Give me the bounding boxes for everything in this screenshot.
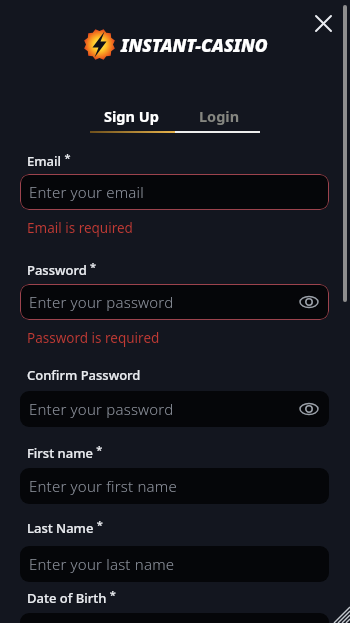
staticText: Login [199,106,240,126]
staticText: Email * [27,150,71,170]
button[interactable]: Enter your first name [20,468,329,504]
staticText: Password * [27,259,97,279]
staticText: Enter your password [29,292,174,312]
button[interactable] [306,6,340,40]
button[interactable]: Enter your email [20,174,329,210]
staticText: Enter your email [29,182,144,202]
staticText: Password is required [27,329,160,347]
staticText: Sign Up [104,106,159,126]
button[interactable]: Enter your password [20,284,329,320]
staticText: First name * [27,442,103,462]
button[interactable]: Login [176,103,262,129]
staticText: INSTANT-CASINO [121,33,268,57]
button[interactable]: Enter your password [20,391,329,427]
staticText: Email is required [27,219,133,237]
button[interactable]: Enter your last name [20,546,329,582]
staticText: Confirm Password [27,366,141,384]
staticText: Last Name * [27,517,103,537]
staticText: Date of Birth * [27,587,116,607]
staticText: Enter your last name [29,554,175,574]
staticText: Enter your first name [29,476,177,496]
staticText: Enter your password [29,399,174,419]
button[interactable]: Sign Up [88,103,174,129]
